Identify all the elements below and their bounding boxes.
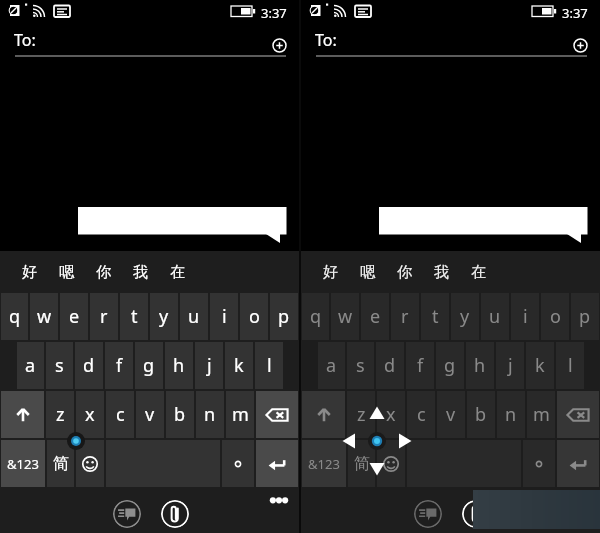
button[interactable]: y xyxy=(150,293,178,340)
button[interactable]: j xyxy=(195,342,223,389)
button[interactable]: w xyxy=(30,293,58,340)
staticText: g xyxy=(444,353,456,378)
button[interactable]: f xyxy=(105,342,133,389)
button[interactable]: Backspace xyxy=(256,391,298,438)
staticText: 我 xyxy=(133,263,148,282)
staticText: t xyxy=(131,304,138,329)
button[interactable]: r xyxy=(391,293,419,340)
button[interactable]: p xyxy=(571,293,599,340)
button[interactable]: Period xyxy=(222,440,254,487)
button[interactable]: v xyxy=(437,391,465,438)
button[interactable]: Speech input xyxy=(113,500,141,528)
staticText: c xyxy=(417,402,426,427)
button[interactable]: j xyxy=(496,342,524,389)
button[interactable]: 嗯 xyxy=(48,251,85,293)
button[interactable]: t xyxy=(421,293,449,340)
button[interactable]: 你 xyxy=(386,251,423,293)
button[interactable]: l xyxy=(255,342,283,389)
button[interactable]: 嗯 xyxy=(349,251,386,293)
button[interactable]: Add recipient xyxy=(573,38,588,53)
button[interactable]: Attach xyxy=(462,500,490,528)
staticText: e xyxy=(69,304,80,329)
button[interactable]: h xyxy=(466,342,494,389)
staticText: 好 xyxy=(22,263,37,282)
button[interactable]: e xyxy=(361,293,389,340)
staticText: 嗯 xyxy=(59,263,74,282)
staticText: d xyxy=(83,353,95,378)
button[interactable]: d xyxy=(75,342,103,389)
button[interactable]: 在 xyxy=(460,251,497,293)
button[interactable]: More options xyxy=(262,490,296,512)
button[interactable]: Emoji xyxy=(76,440,104,487)
button[interactable]: 你 xyxy=(85,251,122,293)
button[interactable]: Shift xyxy=(302,391,345,438)
button[interactable]: 我 xyxy=(122,251,159,293)
button[interactable]: s xyxy=(347,342,374,389)
button[interactable]: k xyxy=(225,342,253,389)
button[interactable]: r xyxy=(90,293,118,340)
button[interactable]: Enter xyxy=(256,440,298,487)
button[interactable]: i xyxy=(210,293,238,340)
button[interactable]: x xyxy=(377,391,405,438)
button[interactable]: Add recipient xyxy=(272,38,287,53)
button[interactable]: y xyxy=(451,293,479,340)
button[interactable]: w xyxy=(331,293,359,340)
button[interactable]: Backspace xyxy=(557,391,599,438)
button[interactable]: g xyxy=(135,342,163,389)
button[interactable]: i xyxy=(511,293,539,340)
button[interactable]: 好 xyxy=(312,251,349,293)
button[interactable]: t xyxy=(120,293,148,340)
button[interactable]: v xyxy=(136,391,164,438)
button[interactable]: h xyxy=(165,342,193,389)
button[interactable]: o xyxy=(541,293,569,340)
button[interactable]: g xyxy=(436,342,464,389)
button[interactable]: 简 xyxy=(348,440,375,487)
button[interactable]: z xyxy=(46,391,74,438)
staticText: 你 xyxy=(397,263,412,282)
staticText: y xyxy=(460,304,470,329)
button[interactable]: q xyxy=(1,293,28,340)
button[interactable]: Speech input xyxy=(414,500,442,528)
button[interactable]: q xyxy=(302,293,329,340)
staticText: 嗯 xyxy=(360,263,375,282)
button[interactable] xyxy=(407,440,521,487)
button[interactable]: k xyxy=(526,342,554,389)
button[interactable]: 好 xyxy=(11,251,48,293)
button[interactable]: Shift xyxy=(1,391,44,438)
button[interactable]: u xyxy=(180,293,208,340)
button[interactable]: b xyxy=(166,391,194,438)
staticText: t xyxy=(432,304,439,329)
staticText: m xyxy=(533,402,550,427)
button[interactable]: 简 xyxy=(47,440,74,487)
button[interactable]: b xyxy=(467,391,495,438)
button[interactable]: u xyxy=(481,293,509,340)
button[interactable]: n xyxy=(196,391,224,438)
button[interactable]: l xyxy=(556,342,584,389)
button[interactable]: d xyxy=(376,342,404,389)
button[interactable]: o xyxy=(240,293,268,340)
button[interactable]: a xyxy=(318,342,345,389)
button[interactable]: c xyxy=(407,391,435,438)
button[interactable]: 我 xyxy=(423,251,460,293)
button[interactable]: p xyxy=(270,293,298,340)
button[interactable]: &123 xyxy=(302,440,346,487)
button[interactable]: s xyxy=(46,342,73,389)
button[interactable]: a xyxy=(17,342,44,389)
button[interactable]: m xyxy=(527,391,555,438)
button[interactable]: e xyxy=(60,293,88,340)
button[interactable]: Attach xyxy=(161,500,189,528)
button[interactable]: z xyxy=(347,391,375,438)
button[interactable]: Enter xyxy=(557,440,599,487)
button[interactable]: f xyxy=(406,342,434,389)
button[interactable]: &123 xyxy=(1,440,45,487)
button[interactable]: c xyxy=(106,391,134,438)
button[interactable]: n xyxy=(497,391,525,438)
button[interactable]: Period xyxy=(523,440,555,487)
button[interactable]: Emoji xyxy=(377,440,405,487)
button[interactable]: m xyxy=(226,391,254,438)
button[interactable]: 在 xyxy=(159,251,196,293)
staticText: u xyxy=(489,304,501,329)
button[interactable]: x xyxy=(76,391,104,438)
